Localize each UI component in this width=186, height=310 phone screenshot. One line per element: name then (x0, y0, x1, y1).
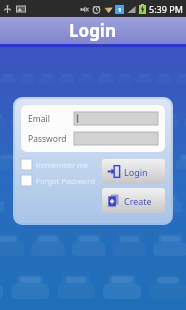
button[interactable]: Forgot Password (21, 175, 96, 186)
staticText: 1 (118, 6, 122, 14)
button[interactable]: Login (102, 159, 165, 184)
button[interactable]: Remember me (21, 159, 89, 170)
staticText: Remember me (36, 160, 89, 170)
staticText: Create (124, 195, 152, 207)
staticText: Forgot Password (36, 176, 96, 186)
button[interactable]: Create (102, 188, 165, 213)
staticText: Login (69, 19, 117, 42)
staticText: Email (28, 113, 50, 125)
button[interactable] (74, 132, 158, 145)
staticText: Login (124, 166, 148, 178)
staticText: Password (28, 133, 67, 145)
staticText: 5:39 PM (149, 3, 183, 15)
button[interactable] (74, 112, 158, 125)
